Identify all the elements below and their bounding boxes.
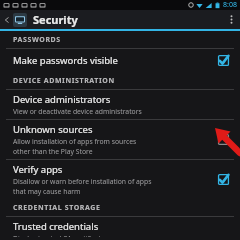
button[interactable]: Unknown sources [0, 120, 240, 159]
button[interactable]: Device administrators [0, 90, 240, 119]
button[interactable]: Navigate up [2, 17, 12, 23]
staticText: Trusted credentials [13, 220, 99, 233]
staticText: other than the Play Store [13, 147, 93, 156]
button[interactable]: More options [227, 12, 236, 27]
staticText: Unknown sources [13, 123, 93, 136]
staticText: Security [33, 12, 78, 27]
staticText: Allow installation of apps from sources [13, 137, 137, 146]
button[interactable]: Make passwords visible [0, 49, 240, 72]
staticText: PASSWORDS [13, 35, 61, 45]
staticText: 8:08 [223, 0, 237, 10]
staticText: that may cause harm [13, 187, 81, 196]
staticText: Disallow or warn before installation of … [13, 177, 152, 186]
staticText: View or deactivate device administrators [13, 107, 142, 116]
staticText: Make passwords visible [13, 54, 118, 67]
staticText: CREDENTIAL STORAGE [13, 203, 101, 213]
button[interactable]: Trusted credentials [0, 217, 240, 240]
staticText: DEVICE ADMINISTRATION [13, 76, 115, 86]
staticText: Device administrators [13, 93, 111, 106]
staticText: Verify apps [13, 163, 63, 176]
button[interactable]: Verify apps [0, 160, 240, 199]
staticText: Display trusted CA certificates [13, 234, 109, 237]
